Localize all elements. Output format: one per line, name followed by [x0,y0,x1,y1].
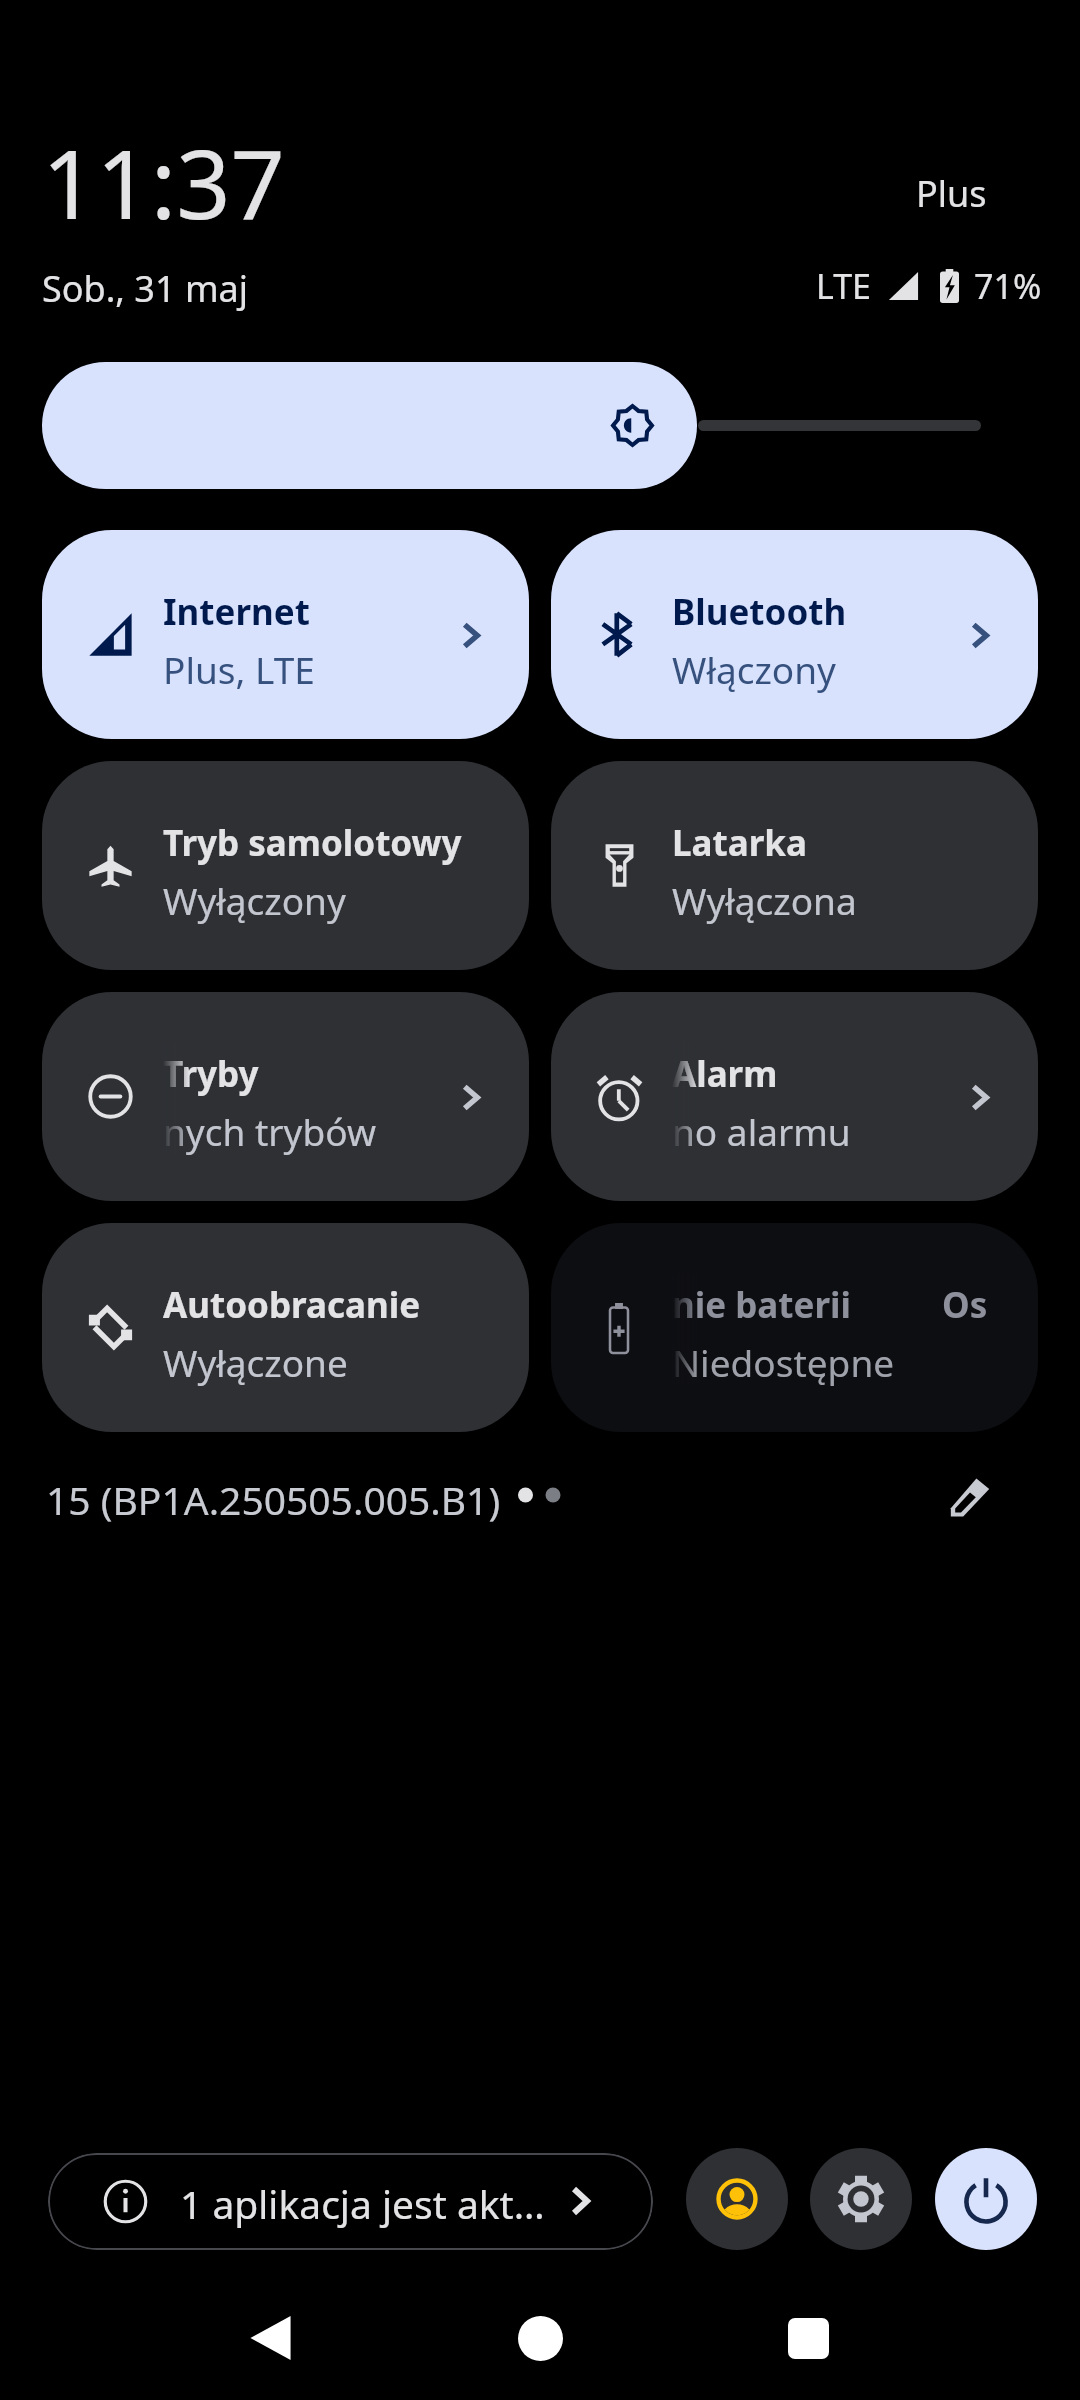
button[interactable]: nie baterii Os [551,1223,1038,1432]
staticText: Autoobracanie [163,1281,421,1329]
button[interactable]: Home [480,2290,600,2386]
button[interactable]: Brightness [42,362,1038,489]
staticText: Internet [163,588,310,636]
button[interactable]: Back [210,2290,330,2386]
button[interactable]: Tryby [42,992,529,1201]
button[interactable]: Internet [42,530,529,739]
staticText: nych trybów [163,1106,376,1156]
staticText: no alarmu [672,1106,851,1156]
staticText: nie baterii Os [672,1281,988,1329]
staticText: Sob., 31 maj [42,264,249,313]
button[interactable]: Latarka [551,761,1038,970]
button[interactable]: Edit tiles [932,1459,1008,1535]
button[interactable]: 1 aplikacja jest aktywna [48,2153,653,2250]
staticText: 71% [974,263,1042,309]
staticText: 1 aplikacja jest aktywna [180,2177,558,2230]
staticText: Wyłączona [672,875,857,925]
staticText: Alarm [672,1050,778,1098]
staticText: Tryb samolotowy [163,819,462,867]
staticText: Niedostępne [672,1337,895,1387]
staticText: 15 (BP1A.250505.005.B1) [46,1473,501,1526]
button[interactable]: Autoobracanie [42,1223,529,1432]
button[interactable]: Settings [810,2148,912,2250]
staticText: LTE [816,263,871,309]
staticText: 11:37 [42,117,285,246]
staticText: Bluetooth [672,588,847,636]
button[interactable]: Power [935,2148,1037,2250]
button[interactable]: Recents [748,2290,868,2386]
staticText: Latarka [672,819,807,867]
staticText: Plus [916,169,987,218]
button[interactable]: Alarm [551,992,1038,1201]
staticText: Wyłączony [163,875,346,925]
staticText: Włączony [672,644,836,694]
button[interactable]: Bluetooth [551,530,1038,739]
staticText: Wyłączone [163,1337,348,1387]
staticText: Plus, LTE [163,644,315,694]
button[interactable]: Tryb samolotowy [42,761,529,970]
button[interactable]: Account [686,2148,788,2250]
staticText: Tryby [163,1050,259,1098]
